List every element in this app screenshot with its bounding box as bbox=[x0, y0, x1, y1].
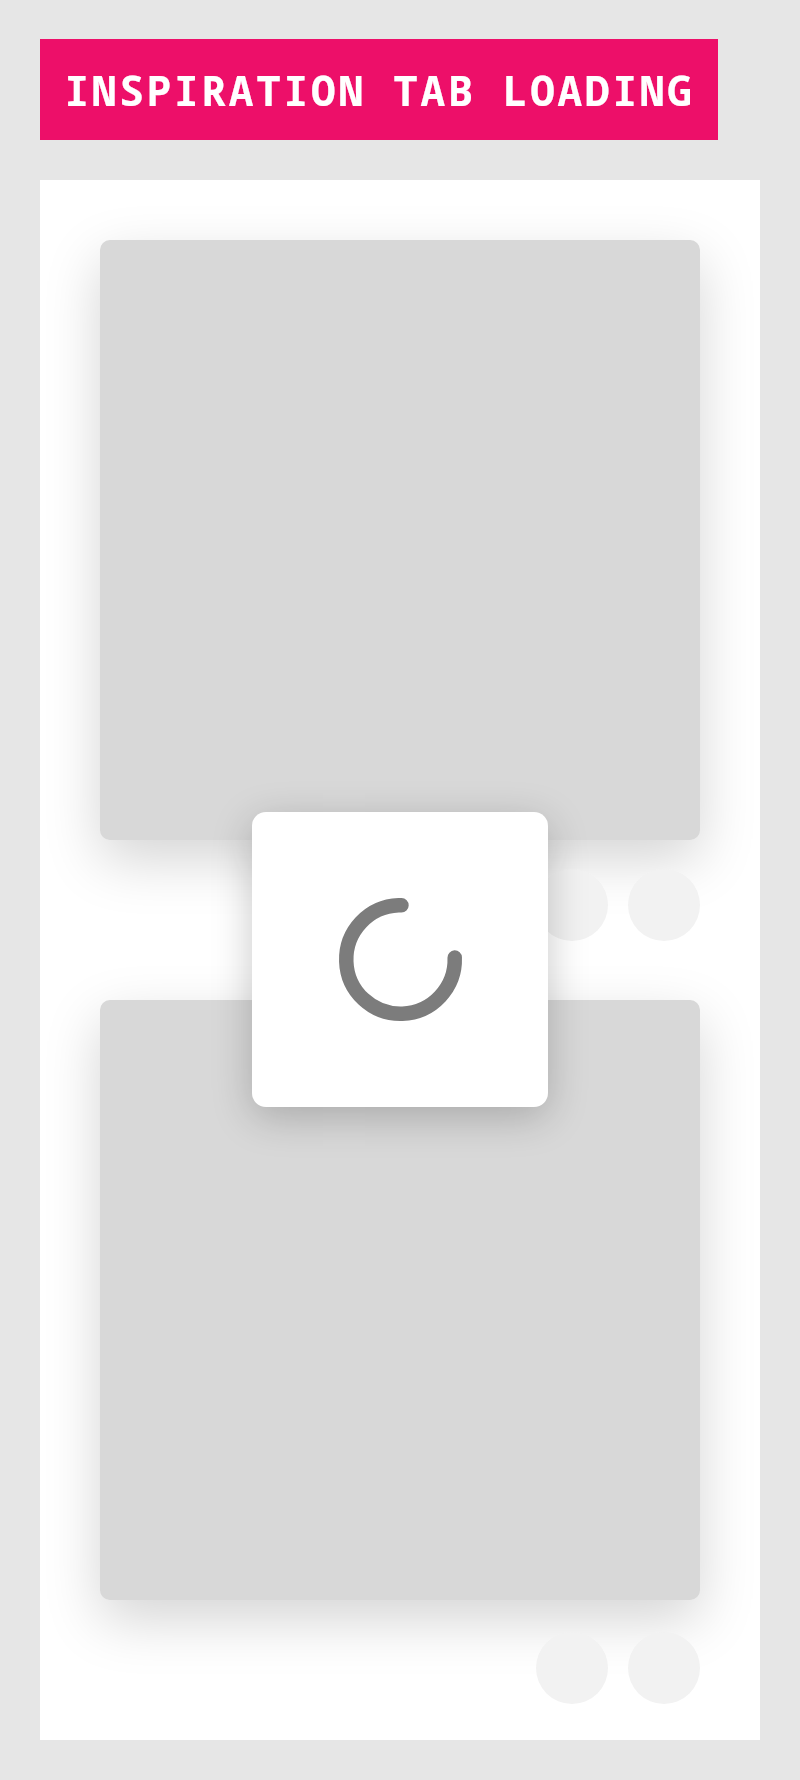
other: Loading bbox=[252, 812, 548, 1107]
staticText: INSPIRATION TAB LOADING bbox=[64, 62, 695, 118]
button[interactable]: Inspiration item placeholder bbox=[100, 1000, 700, 1600]
button[interactable]: INSPIRATION TAB LOADING bbox=[40, 39, 718, 140]
button[interactable]: Inspiration item placeholder bbox=[100, 240, 700, 840]
